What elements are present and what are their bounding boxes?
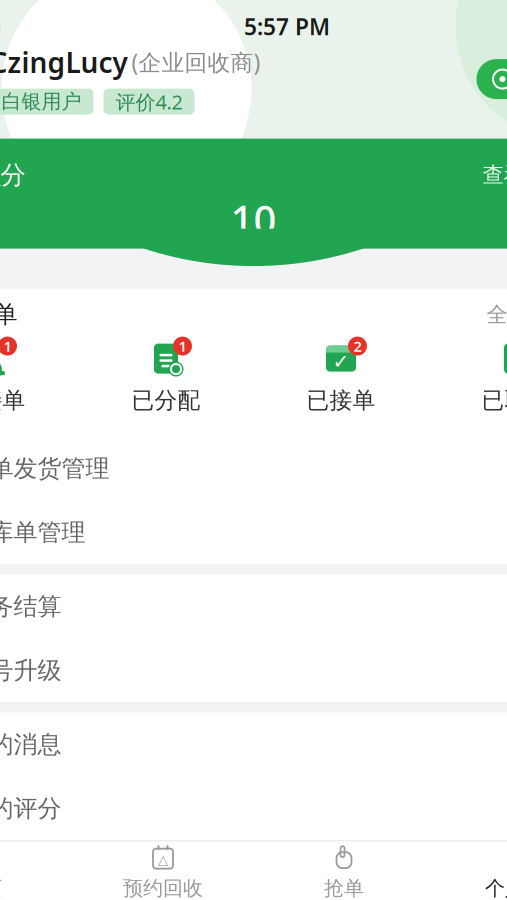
staticText: CzingLucy	[0, 43, 127, 81]
button[interactable]: ✓	[253, 341, 428, 414]
button[interactable]: △	[72, 844, 253, 900]
staticText: 账号升级	[0, 656, 61, 685]
staticText: 1	[178, 336, 186, 356]
button[interactable]: 我的订单	[0, 289, 507, 341]
button[interactable]: ✕	[428, 341, 507, 414]
staticText: 预约回收	[123, 876, 203, 900]
button[interactable]: 个人中心	[434, 844, 507, 900]
staticText: 我的消息	[0, 730, 61, 759]
staticText: ✓	[332, 350, 349, 373]
staticText: 个人中心	[485, 876, 507, 900]
staticText: 出库单管理	[0, 518, 85, 547]
staticText: (企业回收商)	[131, 47, 260, 77]
staticText: 待接单	[0, 387, 25, 414]
staticText: 1	[3, 336, 11, 356]
button[interactable]: 我的评分	[0, 776, 507, 840]
button[interactable]: 订单发货管理	[0, 436, 507, 500]
button[interactable]: ↑	[0, 500, 507, 564]
staticText: 我的订单	[0, 300, 17, 329]
staticText: 查看更多	[482, 162, 507, 188]
staticText: 订单发货管理	[0, 454, 109, 483]
staticText: ≈	[0, 14, 2, 39]
button[interactable]: 地址管理	[476, 59, 507, 99]
staticText: 5:57 PM	[244, 11, 330, 41]
button[interactable]: 我的消息	[0, 712, 507, 776]
button[interactable]: 1	[78, 341, 253, 414]
staticText: 首页	[0, 876, 2, 900]
staticText: 全部订单	[486, 301, 507, 328]
staticText: 财务结算	[0, 592, 61, 621]
staticText: 抢单	[324, 876, 364, 900]
staticText: △	[158, 852, 168, 867]
button[interactable]: ¥	[0, 574, 507, 638]
staticText: 10	[230, 193, 276, 246]
staticText: 已接单	[306, 387, 375, 414]
button[interactable]: ✩	[0, 638, 507, 702]
staticText: 评价4.2	[115, 88, 182, 115]
button[interactable]: 抢单	[253, 844, 434, 900]
staticText: 已分配	[131, 387, 200, 414]
staticText: 环保积分	[0, 159, 25, 191]
staticText: 2	[353, 336, 361, 356]
button[interactable]: 1	[0, 341, 78, 414]
button[interactable]: 环保积分	[0, 135, 507, 193]
staticText: 已取消	[481, 387, 507, 414]
staticText: 我的评分	[0, 794, 61, 823]
staticText: 白银用户	[1, 89, 81, 114]
